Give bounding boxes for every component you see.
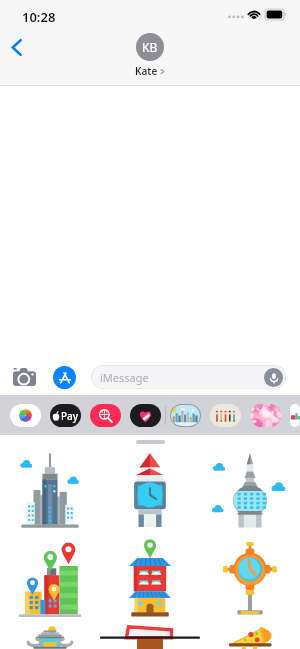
button[interactable]: iMessage — [91, 365, 286, 389]
button[interactable]: Sticker — [200, 623, 300, 649]
staticText: KB — [142, 39, 158, 55]
button[interactable]: Sticker — [200, 447, 300, 533]
button[interactable]: App Store — [53, 366, 76, 389]
staticText: iMessage — [100, 370, 149, 385]
button[interactable]: App — [90, 404, 121, 427]
button[interactable]: Camera — [12, 365, 36, 389]
button[interactable]: Sticker — [100, 533, 200, 623]
button[interactable]: App — [130, 404, 161, 427]
button[interactable]: App — [250, 404, 281, 427]
button[interactable]: App — [170, 404, 201, 427]
button[interactable]: App — [50, 404, 81, 427]
button[interactable]: App — [290, 404, 300, 427]
button[interactable]: KB — [135, 33, 165, 78]
button[interactable]: App — [10, 404, 41, 427]
button[interactable]: Sticker — [200, 533, 300, 623]
button[interactable]: Back — [0, 31, 32, 63]
button[interactable]: Sticker — [100, 447, 200, 533]
button[interactable]: App — [210, 404, 241, 427]
button[interactable]: Sticker — [0, 447, 100, 533]
staticText: 10:28 — [22, 8, 56, 26]
staticText: Pay — [61, 409, 79, 423]
staticText: Kate — [135, 64, 158, 78]
button[interactable]: Sticker — [100, 623, 200, 649]
button[interactable]: Sticker — [0, 533, 100, 623]
button[interactable]: Sticker — [0, 623, 100, 649]
button[interactable]: Audio message — [264, 368, 283, 387]
